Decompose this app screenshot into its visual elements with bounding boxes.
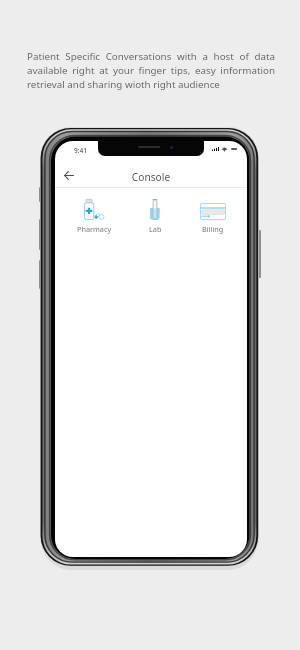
staticText: Lab <box>149 224 162 234</box>
button[interactable]: Lab <box>126 198 184 234</box>
staticText: Console <box>55 170 247 184</box>
staticText: 9:41 <box>74 146 88 155</box>
staticText: Pharmacy <box>77 224 112 234</box>
button[interactable]: Billing <box>184 198 242 234</box>
button[interactable]: Back <box>58 164 80 186</box>
button[interactable]: Pharmacy <box>65 198 123 234</box>
staticText: Patient Specific Conversations with a ho… <box>27 50 275 91</box>
staticText: Billing <box>202 224 224 234</box>
